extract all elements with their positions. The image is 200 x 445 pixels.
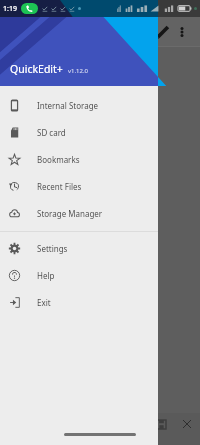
staticText: Settings [37,243,68,254]
button[interactable]: Exit [0,289,158,316]
staticText: v1.12.0 [68,67,88,75]
button[interactable]: Close [177,414,197,434]
staticText: Internal Storage [37,100,99,111]
button[interactable]: More options [172,22,192,42]
staticText: 1:19 [3,4,17,14]
staticText: QuickEdit+ [10,62,63,76]
button[interactable]: SD card [0,119,158,146]
button[interactable]: Help [0,262,158,289]
button[interactable]: Internal Storage [0,92,158,119]
staticText: Bookmarks [37,154,80,165]
button[interactable]: Save [151,414,171,434]
staticText: Help [37,270,55,281]
button[interactable]: Recent Files [0,173,158,200]
button[interactable]: Edit [150,20,174,44]
button[interactable]: Bookmarks [0,146,158,173]
staticText: Recent Files [37,181,82,192]
button[interactable]: Settings [0,235,158,262]
staticText: Exit [37,297,51,308]
staticText: Storage Manager [37,208,103,219]
button[interactable]: Storage Manager [0,200,158,227]
staticText: SD card [37,127,66,138]
